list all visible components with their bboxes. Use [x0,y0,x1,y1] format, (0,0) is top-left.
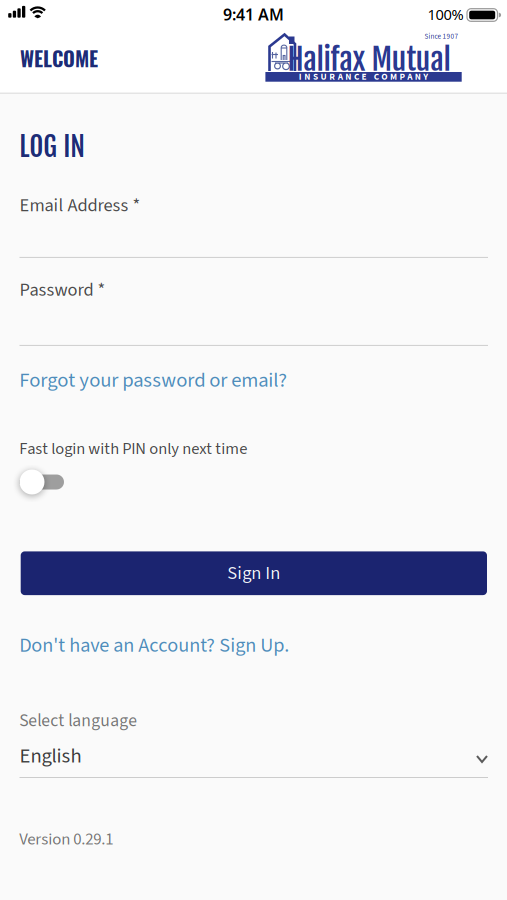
button[interactable]: Sign In [21,551,487,595]
staticText: English [19,741,81,771]
staticText: Select language [19,708,137,733]
staticText: WELCOME [20,43,98,73]
staticText: Sign In [227,560,280,586]
button[interactable]: English [19,741,488,778]
button[interactable]: Forgot your password or email? [19,366,287,395]
staticText: Email Address * [19,192,140,219]
staticText: INSURANCE COMPANY [299,70,428,83]
button[interactable]: Don't have an Account? Sign Up. [19,631,289,660]
staticText: Password * [19,277,105,303]
staticText: Forgot your password or email? [19,366,287,395]
staticText: Halifax Mutual [287,41,450,78]
staticText: 100% [427,5,463,24]
staticText: 9:41 AM [223,4,284,25]
staticText: Version 0.29.1 [19,827,113,851]
staticText: Fast login with PIN only next time [19,437,247,461]
staticText: LOG IN [19,130,85,164]
button[interactable]: Email Address * [19,192,488,258]
button[interactable] [19,469,64,494]
staticText: Don't have an Account? Sign Up. [19,631,289,660]
staticText: Since 1907 [424,31,458,42]
button[interactable]: Password * [19,277,488,346]
